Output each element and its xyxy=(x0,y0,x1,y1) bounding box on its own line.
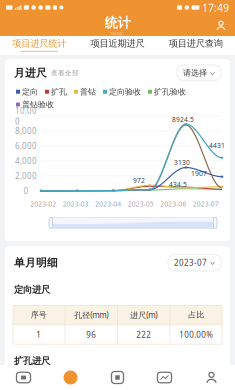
staticText: 请选择 xyxy=(183,68,207,78)
staticText: MUSIC xyxy=(111,31,124,36)
button[interactable]: Home xyxy=(47,365,94,390)
staticText: 8924.5 xyxy=(172,115,194,124)
staticText: 4431 xyxy=(209,141,225,150)
staticText: 定向验收 xyxy=(109,87,141,97)
staticText: 序号 xyxy=(31,310,47,320)
staticText: 单月明细 xyxy=(14,256,58,269)
button[interactable]: Account xyxy=(216,17,235,33)
staticText: 222 xyxy=(136,329,151,340)
staticText: 扩孔进尺 xyxy=(14,355,50,367)
staticText: 2023-05 xyxy=(128,199,154,208)
staticText: 孔径(mm) xyxy=(74,310,108,320)
staticText: 2023-06 xyxy=(160,199,186,208)
staticText: 10,000 xyxy=(15,105,37,127)
button[interactable]: 2023-07 xyxy=(168,254,221,271)
button[interactable]: 项目进尺统计 xyxy=(0,36,78,55)
staticText: 434.5 xyxy=(169,180,187,189)
staticText: 6,000 xyxy=(15,141,37,151)
button[interactable]: 项目近期进尺 xyxy=(78,36,157,55)
staticText: 17:49 xyxy=(202,0,229,15)
staticText: 96 xyxy=(86,329,96,340)
staticText: 普钻 xyxy=(80,87,96,97)
staticText: 查看全部 xyxy=(51,69,79,77)
staticText: 普钻验收 xyxy=(22,100,54,109)
staticText: 扩孔 xyxy=(51,87,67,97)
staticText: 定向 xyxy=(22,87,38,97)
staticText: 2,000 xyxy=(15,171,37,181)
button[interactable]: 项目进尺查询 xyxy=(157,36,235,55)
staticText: 1 xyxy=(36,329,41,340)
button[interactable]: Profile xyxy=(188,365,235,390)
staticText: 0 xyxy=(23,186,28,196)
staticText: 进尺(m) xyxy=(130,310,157,320)
staticText: 8,000 xyxy=(15,126,37,136)
staticText: 2023-07 xyxy=(174,257,207,268)
staticText: 2023-04 xyxy=(95,199,121,208)
staticText: 定向进尺 xyxy=(14,284,50,295)
staticText: 扩孔验收 xyxy=(154,87,186,97)
button[interactable]: 请选择 xyxy=(177,65,221,81)
staticText: 100.00% xyxy=(179,329,213,340)
button[interactable]: Projects xyxy=(94,365,141,390)
staticText: 月进尺 xyxy=(14,66,47,79)
staticText: 3130 xyxy=(174,158,190,167)
staticText: 2023-03 xyxy=(63,199,89,208)
staticText: 项目进尺查询 xyxy=(169,38,223,49)
staticText: 占比 xyxy=(188,310,204,320)
staticText: 项目近期进尺 xyxy=(90,38,144,49)
staticText: 2023-07 xyxy=(193,199,219,208)
staticText: 1907 xyxy=(191,169,207,178)
button[interactable]: Statistics xyxy=(141,365,188,390)
staticText: 项目进尺统计 xyxy=(12,38,66,49)
staticText: 4,000 xyxy=(15,156,37,166)
staticText: 972 xyxy=(133,176,145,185)
staticText: 2023-02 xyxy=(30,199,56,208)
button[interactable]: Messages xyxy=(0,365,47,390)
staticText: 统计 xyxy=(104,15,130,31)
